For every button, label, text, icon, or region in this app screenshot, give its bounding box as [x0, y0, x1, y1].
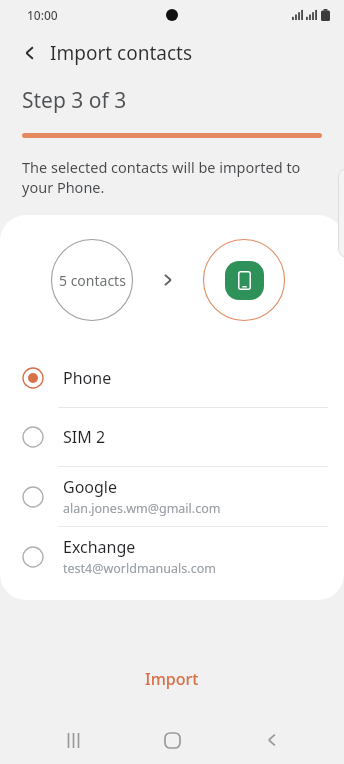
button[interactable]: Phone	[0, 349, 344, 407]
staticText: Phone	[63, 367, 112, 389]
staticText: The selected contacts will be imported t…	[22, 157, 301, 197]
staticText: Import	[145, 668, 199, 690]
button[interactable]: Home	[145, 716, 199, 764]
button[interactable]: Recents	[46, 716, 100, 764]
button[interactable]: Exchange	[0, 527, 344, 586]
staticText: Import contacts	[50, 40, 192, 66]
staticText: alan.jones.wm@gmail.com	[63, 500, 221, 517]
button[interactable]: SIM 2	[0, 408, 344, 466]
staticText: Google	[63, 476, 118, 498]
button[interactable]: Google	[0, 467, 344, 526]
staticText: 5 contacts	[59, 271, 126, 290]
staticText: 10:00	[27, 7, 58, 23]
button[interactable]: Back	[10, 33, 50, 73]
staticText: Exchange	[63, 536, 136, 558]
button[interactable]: Import	[117, 660, 227, 698]
button[interactable]: Back	[245, 716, 299, 764]
staticText: SIM 2	[63, 426, 106, 448]
staticText: test4@worldmanuals.com	[63, 560, 216, 577]
staticText: Step 3 of 3	[22, 86, 127, 115]
